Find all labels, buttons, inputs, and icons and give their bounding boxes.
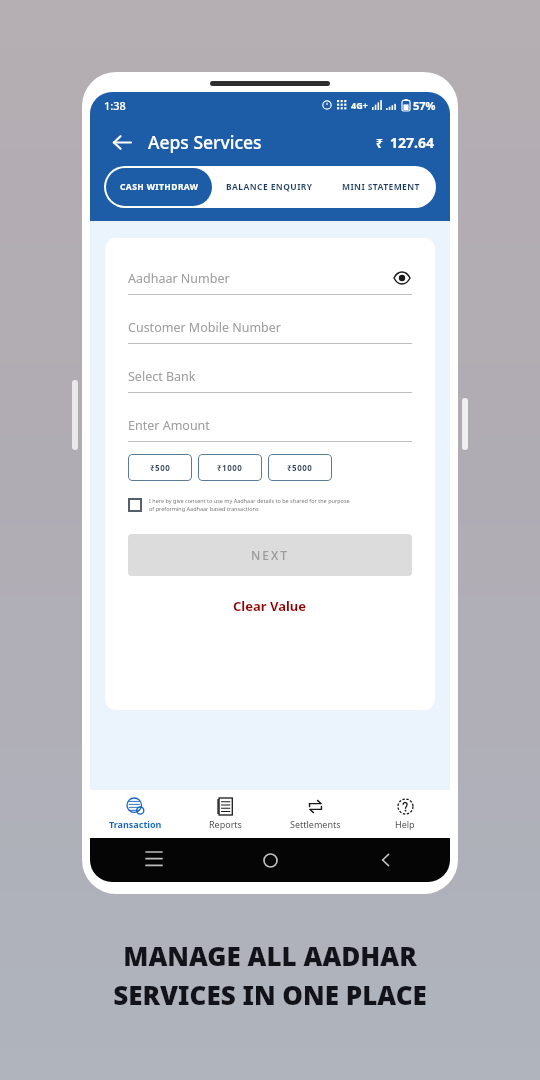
staticText: ₹5000 (287, 462, 313, 473)
button[interactable]: ₹5000 (268, 454, 332, 481)
staticText: BALANCE ENQUIRY (226, 181, 313, 193)
button[interactable]: Transaction (90, 790, 180, 838)
staticText: SERVICES IN ONE PLACE (113, 977, 427, 1012)
button[interactable]: ₹1000 (198, 454, 262, 481)
staticText: I here by give consent to use my Aadhaar… (149, 497, 350, 504)
staticText: ₹500 (150, 462, 171, 473)
button[interactable]: Home (256, 846, 284, 874)
staticText: 57% (413, 98, 436, 113)
button[interactable]: Back (106, 127, 136, 157)
button[interactable]: BALANCE ENQUIRY (214, 166, 325, 208)
button[interactable]: ₹500 (128, 454, 192, 481)
button[interactable]: ₹ (376, 133, 434, 152)
button[interactable]: Select Bank (128, 360, 412, 393)
staticText: Transaction (109, 818, 162, 830)
staticText: Aadhaar Number (128, 270, 230, 287)
button[interactable]: Back (372, 846, 400, 874)
button[interactable]: CASH WITHDRAW (106, 168, 212, 206)
staticText: Reports (209, 818, 242, 830)
button[interactable]: Settlements (270, 790, 360, 838)
staticText: Customer Mobile Number (128, 319, 281, 336)
staticText: 1:38 (104, 98, 126, 113)
staticText: Select Bank (128, 368, 196, 385)
staticText: NEXT (251, 547, 290, 563)
button[interactable]: I here by give consent to use my Aadhaar… (128, 497, 412, 512)
staticText: Help (395, 818, 415, 830)
button[interactable]: Reports (180, 790, 270, 838)
staticText: Aeps Services (148, 130, 262, 154)
staticText: MANAGE ALL AADHAR (123, 938, 417, 973)
staticText: CASH WITHDRAW (120, 181, 199, 193)
other: Show Aadhaar number (392, 268, 412, 288)
staticText: Enter Amount (128, 417, 210, 434)
staticText: of preforming Aadhaar based transactions (149, 505, 259, 512)
staticText: MINI STATEMENT (342, 181, 420, 193)
button[interactable]: Clear Value (229, 593, 311, 619)
staticText: 127.64 (390, 133, 434, 152)
button[interactable]: MINI STATEMENT (325, 166, 436, 208)
staticText: Clear Value (233, 597, 307, 615)
button[interactable]: Help (360, 790, 450, 838)
button[interactable]: Recent apps (140, 846, 168, 874)
staticText: 4G+ (351, 99, 368, 111)
button[interactable]: Aadhaar Number (128, 262, 412, 295)
button[interactable]: NEXT (128, 534, 412, 576)
button[interactable]: Customer Mobile Number (128, 311, 412, 344)
staticText: ₹1000 (217, 462, 243, 473)
staticText: Settlements (290, 818, 341, 830)
staticText: ₹ (376, 135, 383, 151)
button[interactable]: Enter Amount (128, 409, 412, 442)
